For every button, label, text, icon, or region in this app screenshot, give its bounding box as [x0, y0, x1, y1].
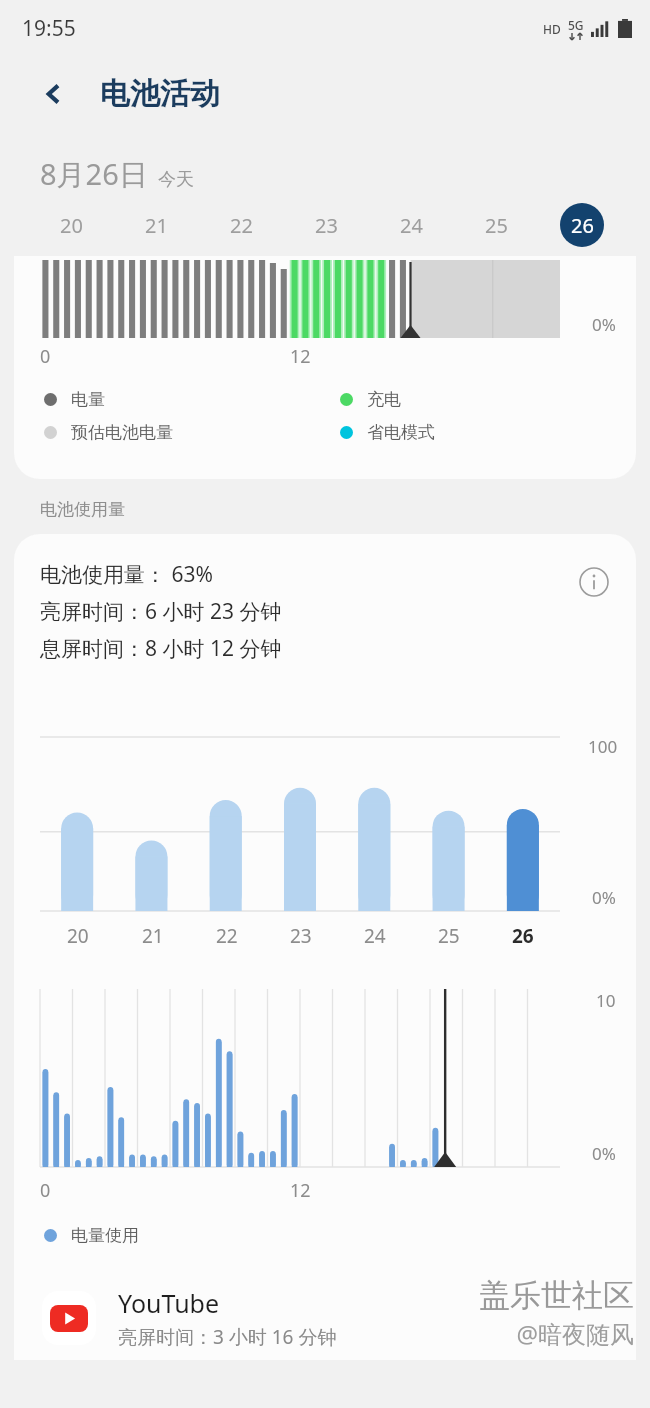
- staticText: 23: [315, 212, 338, 239]
- staticText: 息屏时间：8 小时 12 分钟: [40, 634, 282, 663]
- staticText: 5G: [568, 17, 584, 33]
- staticText: 电池活动: [100, 75, 220, 113]
- button[interactable]: 24: [369, 194, 454, 256]
- staticText: 电池使用量： 63%: [40, 560, 213, 589]
- button[interactable]: 20: [28, 194, 114, 256]
- staticText: 20: [67, 923, 89, 949]
- staticText: 0%: [592, 1142, 616, 1165]
- staticText: 25: [438, 923, 460, 949]
- button[interactable]: Info: [572, 560, 616, 604]
- staticText: 0%: [592, 313, 616, 336]
- staticText: 0: [40, 1178, 51, 1203]
- button[interactable]: Back: [30, 70, 78, 118]
- button[interactable]: 25: [454, 194, 539, 256]
- staticText: 22: [216, 923, 238, 949]
- staticText: 充电: [367, 389, 401, 410]
- button[interactable]: 22: [199, 194, 284, 256]
- staticText: 25: [485, 212, 508, 239]
- button[interactable]: 26: [539, 194, 624, 256]
- staticText: 省电模式: [367, 422, 435, 443]
- staticText: 0: [40, 344, 51, 369]
- staticText: @暗夜随风: [516, 1317, 634, 1350]
- staticText: 26: [571, 212, 594, 239]
- staticText: 21: [145, 212, 168, 239]
- staticText: 亮屏时间：3 小时 16 分钟: [118, 1324, 337, 1350]
- staticText: 12: [290, 344, 311, 369]
- staticText: 8月26日: [40, 154, 148, 194]
- staticText: 24: [364, 923, 386, 949]
- staticText: 10: [596, 989, 616, 1012]
- staticText: 19:55: [22, 14, 76, 43]
- staticText: 今天: [158, 168, 194, 191]
- staticText: 电量: [71, 389, 105, 410]
- staticText: 0%: [592, 886, 616, 909]
- button[interactable]: 21: [114, 194, 199, 256]
- staticText: 24: [400, 212, 423, 239]
- staticText: 亮屏时间：6 小时 23 分钟: [40, 597, 282, 626]
- staticText: 26: [512, 923, 534, 949]
- staticText: 预估电池电量: [71, 422, 173, 443]
- staticText: HD: [543, 21, 561, 37]
- staticText: 22: [230, 212, 253, 239]
- staticText: 盖乐世社区: [479, 1276, 634, 1315]
- staticText: 电池使用量: [40, 499, 125, 520]
- staticText: 20: [60, 212, 83, 239]
- button[interactable]: YouTube: [14, 1280, 636, 1360]
- staticText: 电量使用: [71, 1225, 139, 1246]
- button[interactable]: 23: [284, 194, 369, 256]
- staticText: 23: [290, 923, 312, 949]
- staticText: 21: [142, 923, 164, 949]
- staticText: 100: [588, 735, 618, 758]
- staticText: 12: [290, 1178, 311, 1203]
- staticText: YouTube: [118, 1286, 220, 1320]
